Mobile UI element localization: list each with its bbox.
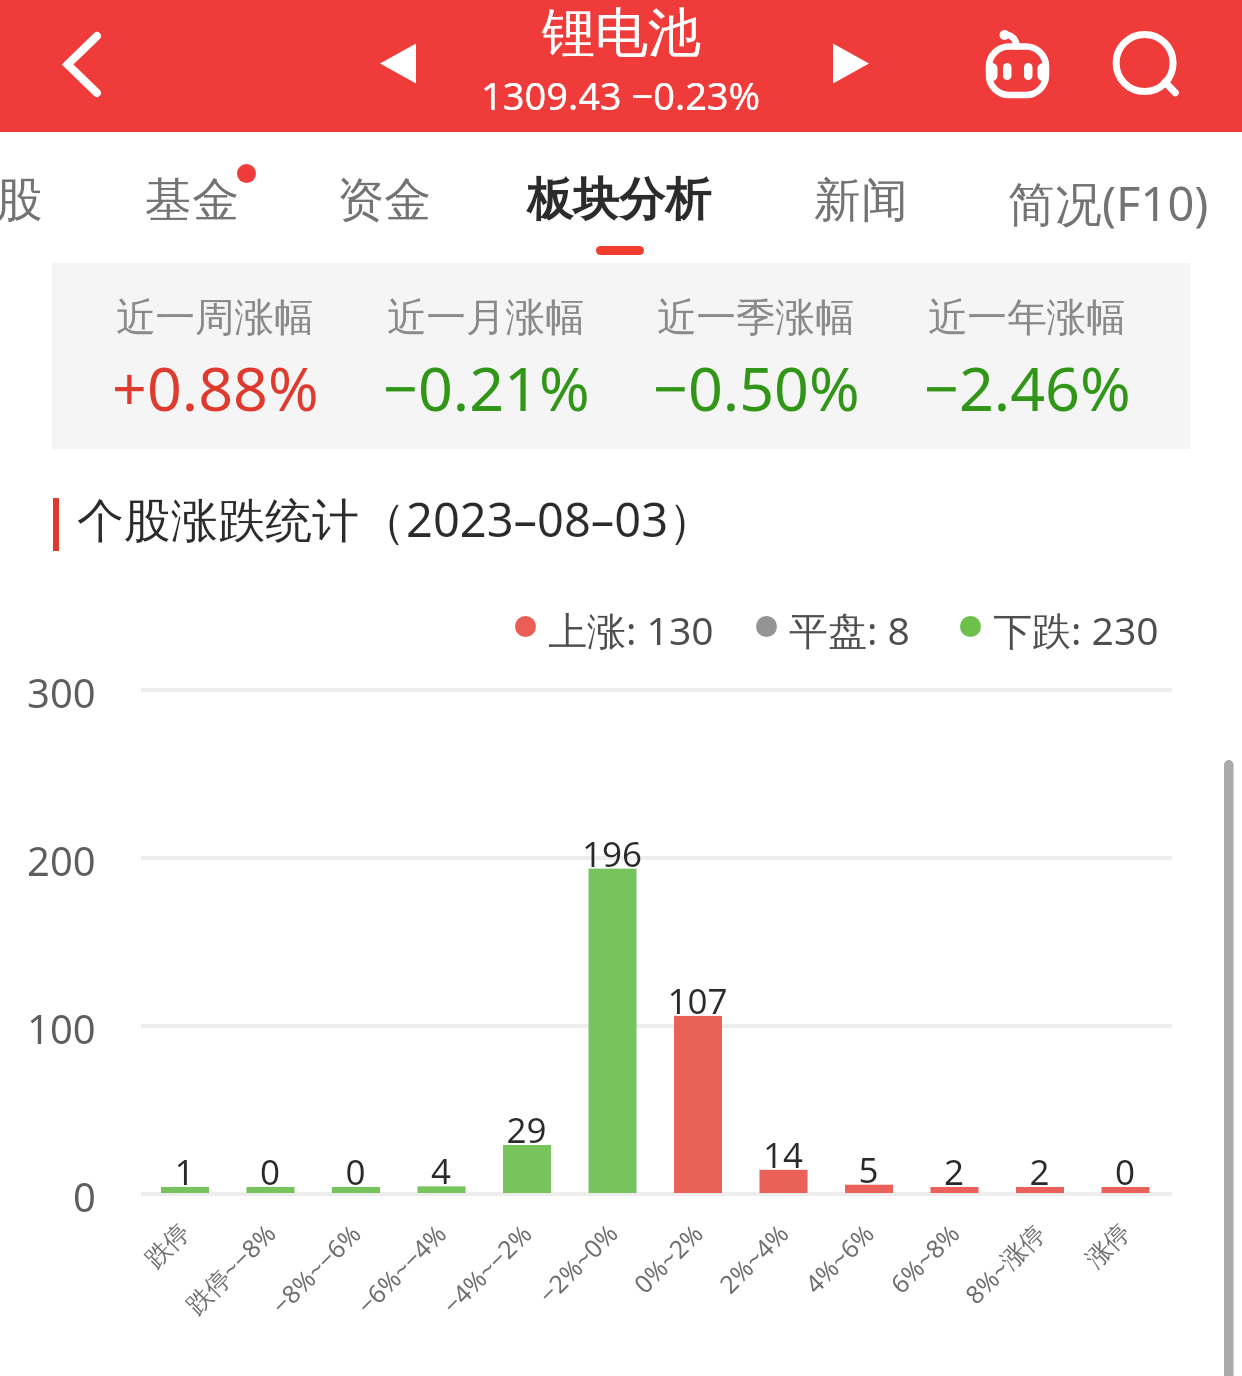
staticText: 锂电池 (542, 0, 701, 67)
staticText: 平盘: 8 (789, 603, 910, 651)
button[interactable]: 近一周涨幅 (85, 263, 345, 449)
button[interactable]: 板块分析 (527, 132, 711, 263)
button[interactable]: Search (1095, 14, 1195, 114)
button[interactable]: 新闻 (814, 132, 908, 263)
staticText: 个股涨跌统计（2023–08–03） (77, 487, 716, 551)
staticText: 个股 (0, 171, 43, 230)
staticText: −0.50% (653, 346, 860, 429)
staticText: −0.21% (383, 346, 590, 429)
button[interactable]: 资金 (337, 132, 431, 263)
button[interactable]: 上涨: 130 (515, 602, 714, 650)
staticText: 近一月涨幅 (387, 293, 585, 343)
staticText: 近一年涨幅 (928, 293, 1126, 343)
staticText: 基金 (145, 171, 239, 230)
button[interactable]: 近一季涨幅 (626, 263, 886, 449)
button[interactable]: 近一月涨幅 (356, 263, 616, 449)
staticText: 资金 (337, 171, 431, 230)
button[interactable]: 个股 (0, 132, 43, 263)
button[interactable]: Back (30, 16, 130, 116)
staticText: 简况(F10) (1008, 171, 1209, 235)
button[interactable]: 下跌: 230 (960, 602, 1159, 650)
staticText: 板块分析 (527, 171, 711, 229)
button[interactable]: 简况(F10) (1008, 132, 1209, 263)
staticText: 1309.43 −0.23% (481, 69, 761, 121)
staticText: −2.46% (924, 346, 1131, 429)
staticText: 上涨: 130 (548, 603, 714, 651)
staticText: 近一季涨幅 (657, 293, 855, 343)
staticText: 新闻 (814, 171, 908, 230)
button[interactable]: Next sector (810, 22, 898, 110)
button[interactable]: 近一年涨幅 (897, 263, 1157, 449)
staticText: 下跌: 230 (993, 603, 1159, 651)
button[interactable]: 基金 (145, 132, 239, 263)
button[interactable]: AI assistant (970, 20, 1070, 120)
button[interactable]: Previous sector (356, 22, 444, 110)
button[interactable]: 平盘: 8 (756, 602, 910, 650)
staticText: +0.88% (112, 346, 319, 429)
staticText: 近一周涨幅 (116, 293, 314, 343)
